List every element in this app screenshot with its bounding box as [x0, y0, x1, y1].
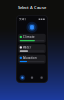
staticText: Water	[23, 46, 31, 49]
button[interactable]: Education	[18, 55, 46, 63]
staticText: Education	[23, 56, 37, 60]
staticText: 9:41	[19, 17, 26, 21]
button[interactable]: Climate	[18, 34, 46, 43]
button[interactable]: Profile	[37, 74, 46, 81]
staticText: Select A Cause	[18, 5, 46, 10]
staticText: Climate	[23, 35, 35, 39]
button[interactable]: Home	[18, 74, 27, 81]
button[interactable]: Causes	[27, 74, 37, 81]
button[interactable]: Water	[18, 44, 46, 53]
